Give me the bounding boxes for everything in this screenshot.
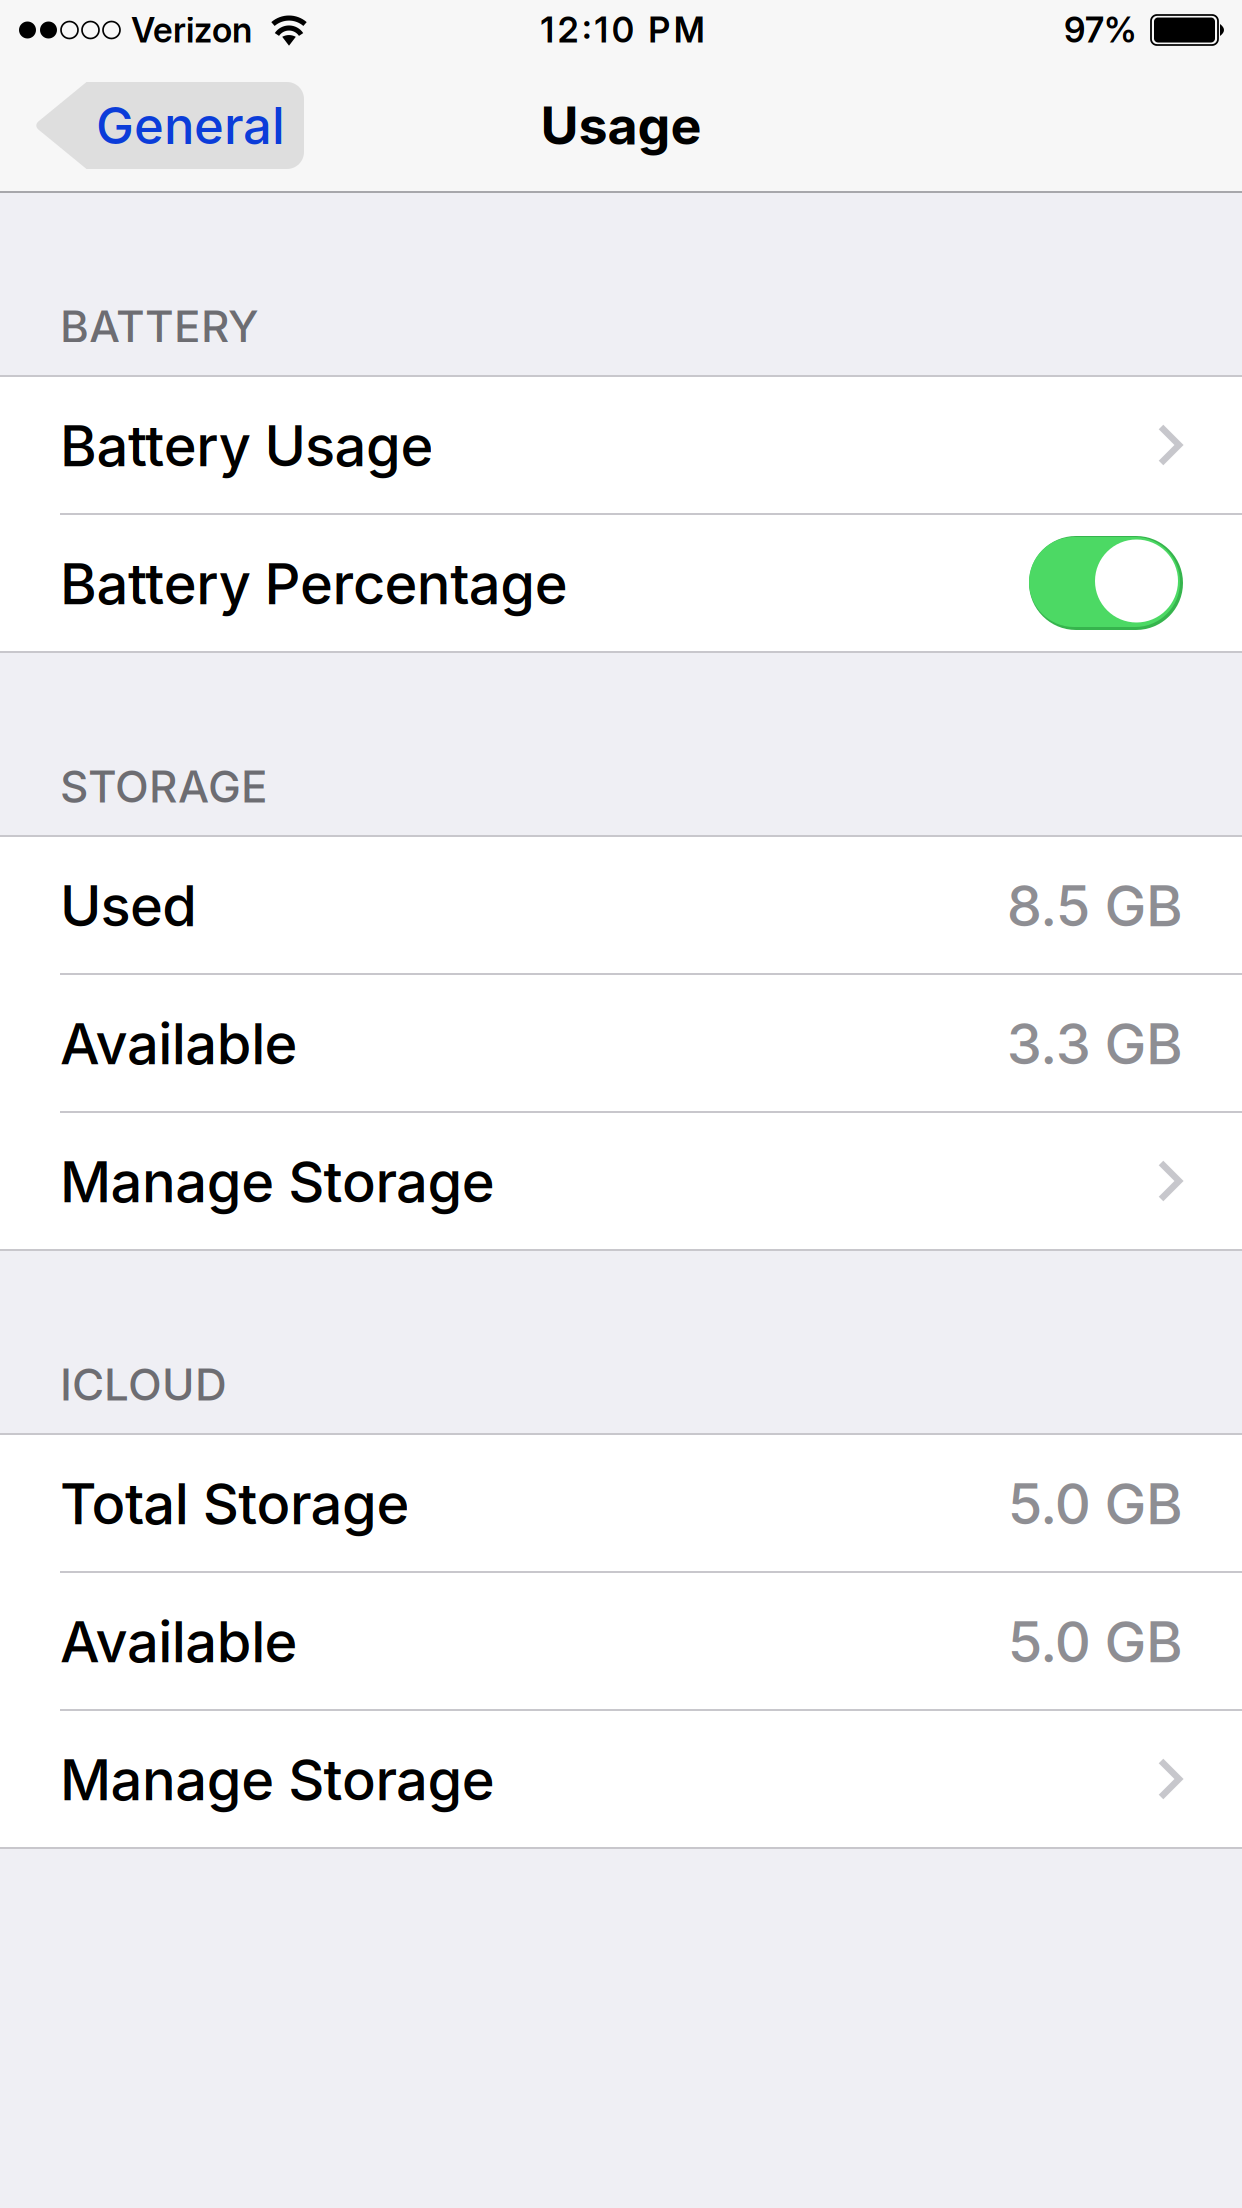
staticText: 97% [1064,9,1137,51]
staticText: Battery Usage [60,412,433,480]
staticText: Manage Storage [60,1746,495,1814]
staticText: Manage Storage [60,1148,495,1216]
staticText: Available [60,1608,298,1676]
button[interactable]: General [34,82,304,169]
staticText: 12:10 PM [541,9,705,51]
staticText: 5.0 GB [1008,1608,1183,1676]
button[interactable]: Manage Storage [0,1711,1242,1847]
staticText: Total Storage [60,1470,409,1538]
staticText: 8.5 GB [1007,872,1183,940]
staticText: 3.3 GB [1007,1010,1183,1078]
staticText: General [96,95,285,156]
button[interactable]: Manage Storage [0,1113,1242,1249]
button[interactable]: Battery Usage [0,377,1242,513]
staticText: ICLOUD [60,1358,227,1411]
staticText: STORAGE [60,760,268,813]
staticText: Usage [540,94,701,157]
staticText: Battery Percentage [60,550,568,618]
staticText: Used [60,872,197,940]
staticText: Available [60,1010,298,1078]
staticText: 5.0 GB [1008,1470,1183,1538]
staticText: BATTERY [60,300,259,353]
staticText: Verizon [131,9,252,51]
button[interactable]: Battery Percentage [1029,536,1183,630]
